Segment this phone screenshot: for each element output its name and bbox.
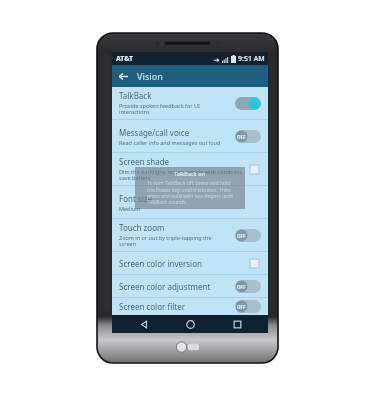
staticText: Touch zoom bbox=[119, 222, 165, 233]
staticText: AT&T bbox=[116, 54, 134, 64]
staticText: OFF bbox=[237, 284, 246, 290]
staticText: Message/call voice notifications bbox=[119, 127, 231, 138]
staticText: 9:51 AM bbox=[238, 54, 265, 64]
button[interactable]: Checkbox bbox=[247, 162, 261, 176]
staticText: Screen shade bbox=[119, 156, 170, 167]
staticText: Screen color filter bbox=[119, 301, 185, 312]
staticText: Provide spoken feedback for UI interacti… bbox=[119, 102, 200, 116]
button[interactable]: Touch zoom bbox=[112, 219, 268, 251]
button[interactable]: Checkbox bbox=[247, 256, 261, 270]
staticText: TalkBack bbox=[119, 90, 152, 101]
button[interactable]: Toggle off bbox=[235, 300, 261, 313]
button[interactable]: Home bbox=[175, 315, 205, 333]
button[interactable]: Font size bbox=[112, 186, 268, 218]
button[interactable]: Screen color filter bbox=[112, 298, 268, 315]
staticText: TalkBack on bbox=[174, 170, 206, 177]
button[interactable]: Recent apps bbox=[222, 315, 252, 333]
button[interactable]: Message/call voice notifications bbox=[112, 120, 268, 152]
staticText: Medium bbox=[119, 205, 141, 212]
button[interactable]: Toggle off bbox=[235, 130, 261, 143]
staticText: Dim the backlight, letting people with b… bbox=[119, 168, 243, 182]
staticText: Screen color inversion bbox=[119, 258, 202, 269]
staticText: Font size bbox=[119, 193, 153, 204]
button[interactable]: Toggle off bbox=[235, 280, 261, 293]
staticText: OFF bbox=[237, 233, 246, 239]
button[interactable]: TalkBack bbox=[112, 87, 268, 119]
button[interactable]: Back bbox=[129, 315, 159, 333]
staticText: To turn TalkBack off, press and hold the… bbox=[147, 180, 233, 206]
button[interactable]: Toggle off bbox=[235, 229, 261, 242]
staticText: Vision bbox=[137, 70, 163, 82]
staticText: OFF bbox=[237, 304, 246, 310]
staticText: Read caller info and messages out loud bbox=[119, 139, 221, 146]
button[interactable]: Back bbox=[112, 65, 134, 87]
button[interactable]: Screen color inversion bbox=[112, 252, 268, 274]
button[interactable]: Toggle on bbox=[235, 97, 261, 110]
staticText: OFF bbox=[237, 134, 246, 140]
button[interactable]: Screen shade bbox=[112, 153, 268, 185]
staticText: Zoom in or out by triple-tapping the scr… bbox=[119, 234, 212, 248]
staticText: Screen color adjustment bbox=[119, 281, 211, 292]
button[interactable]: Screen color adjustment bbox=[112, 275, 268, 297]
